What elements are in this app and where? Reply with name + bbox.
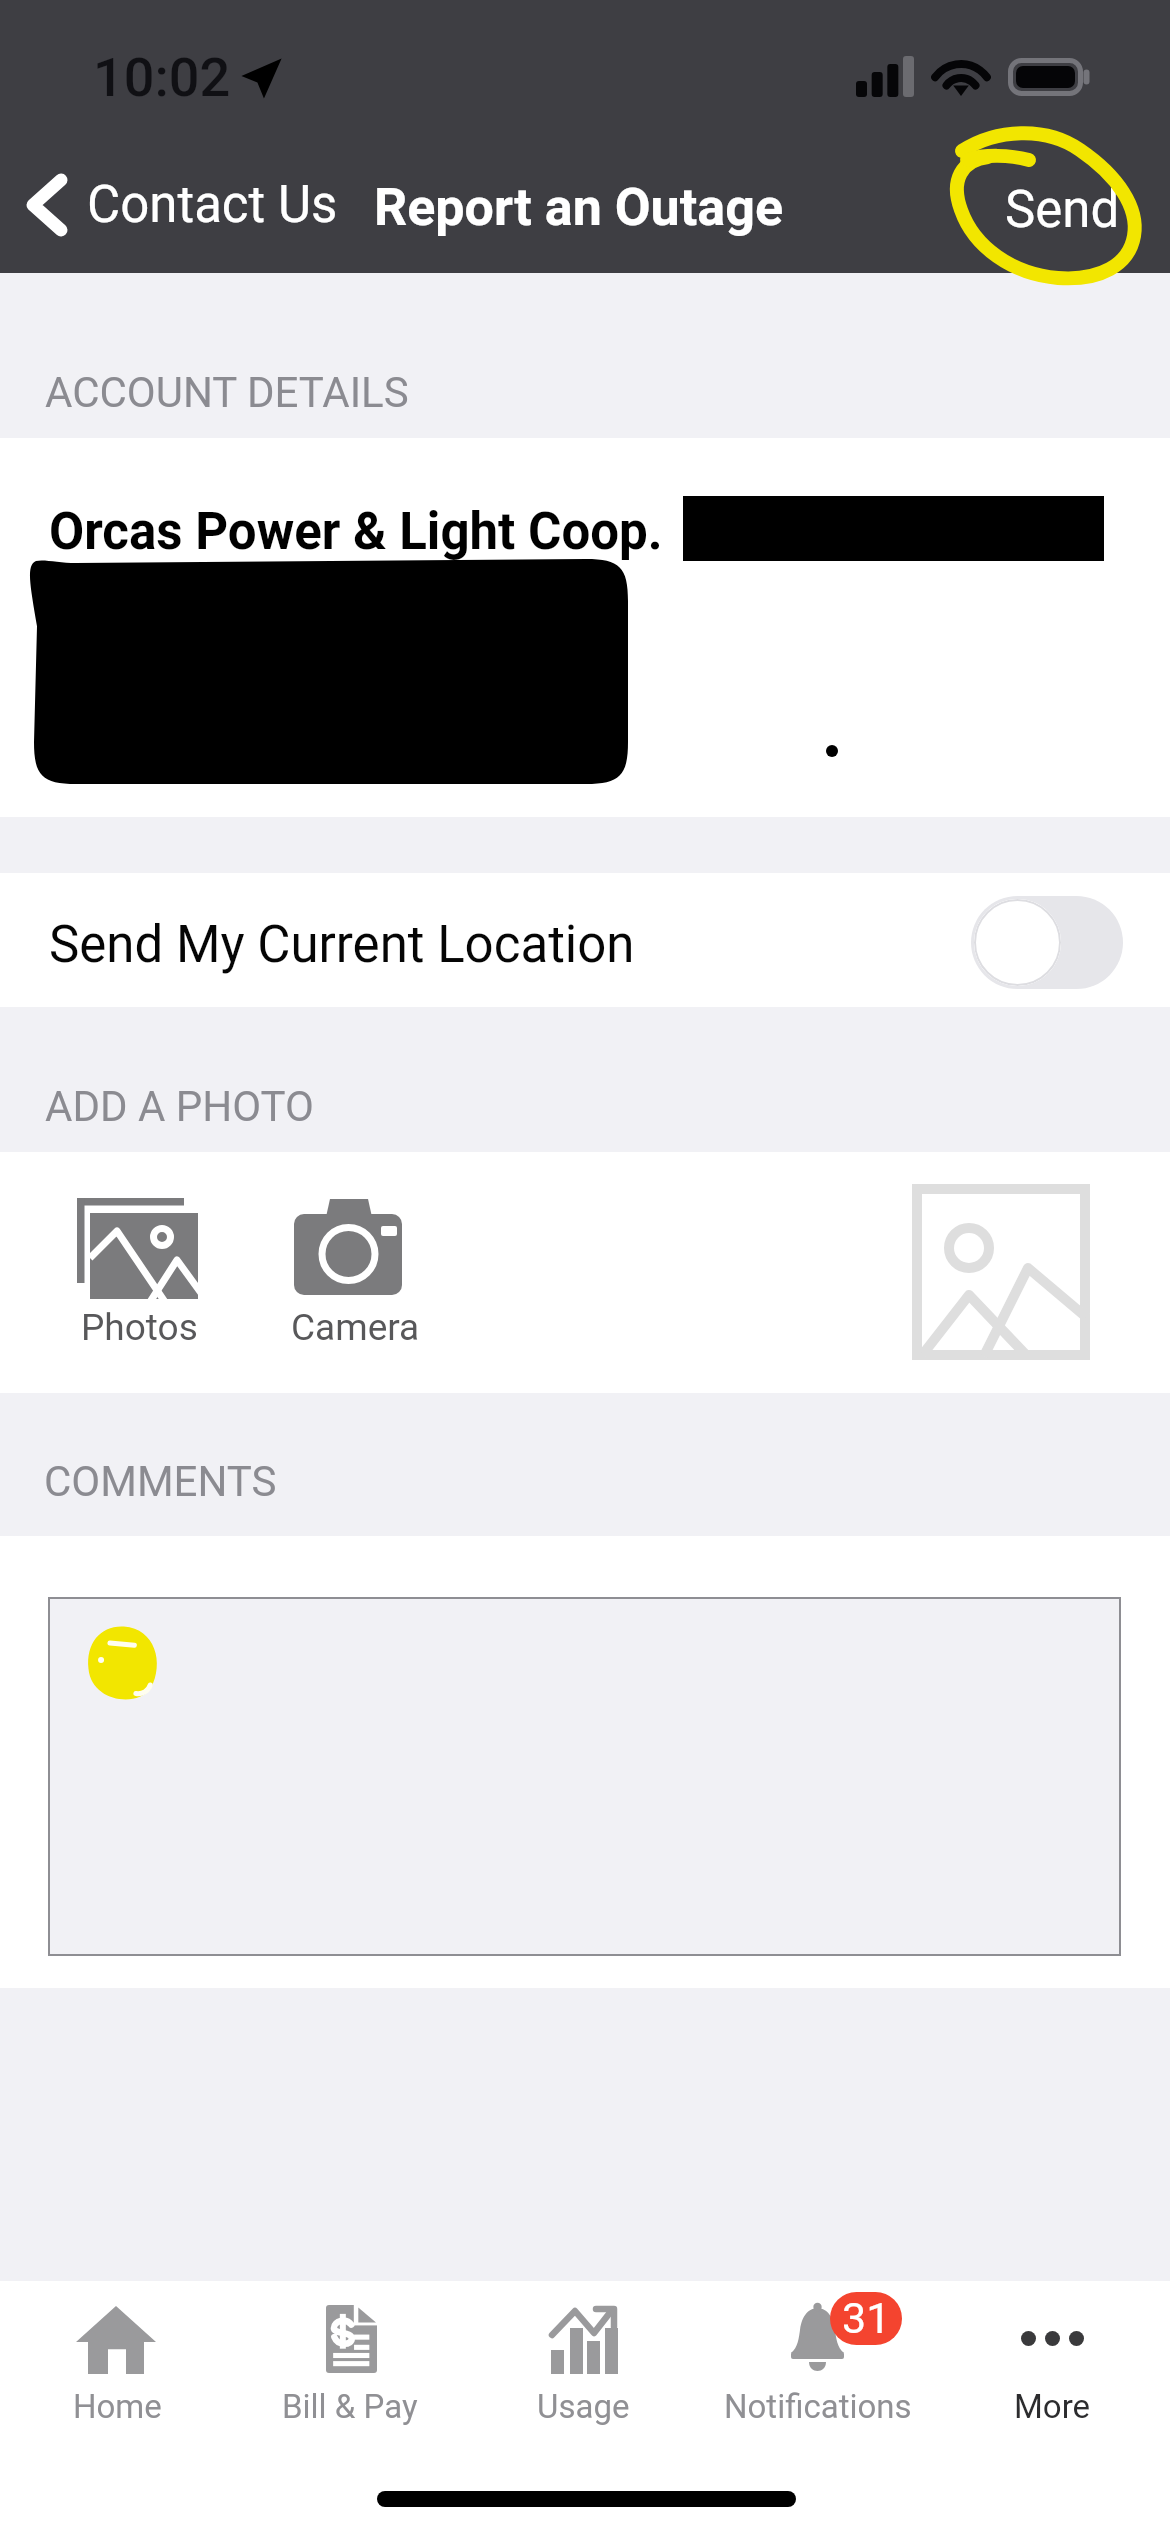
button[interactable]	[48, 1597, 1121, 1956]
button[interactable]: Contact Us	[18, 165, 346, 245]
staticText: 10:02	[93, 46, 231, 109]
button[interactable]	[702, 2281, 936, 2459]
staticText: Home	[73, 2387, 162, 2426]
button[interactable]: Photos	[62, 1186, 212, 1361]
button[interactable]	[234, 2281, 468, 2459]
staticText: Orcas Power & Light Coop.	[49, 502, 663, 562]
button[interactable]	[936, 2281, 1170, 2459]
staticText: Send My Current Location	[49, 915, 635, 975]
staticText: More	[1014, 2387, 1091, 2426]
staticText: Photos	[81, 1306, 198, 1349]
staticText: Camera	[291, 1306, 420, 1349]
button[interactable]: Camera	[282, 1186, 422, 1361]
staticText: COMMENTS	[44, 1457, 277, 1506]
button[interactable]: Send My Current Location	[0, 873, 1170, 1007]
button[interactable]	[468, 2281, 702, 2459]
staticText: ADD A PHOTO	[45, 1082, 314, 1131]
staticText: Send	[1005, 180, 1120, 240]
staticText: Contact Us	[87, 175, 338, 235]
staticText: ACCOUNT DETAILS	[45, 368, 409, 417]
button[interactable]: Send	[987, 170, 1138, 250]
staticText: Usage	[537, 2387, 630, 2426]
staticText: Bill & Pay	[282, 2387, 418, 2426]
button[interactable]	[0, 2281, 234, 2459]
staticText: Report an Outage	[374, 177, 783, 238]
staticText: 31	[842, 2293, 891, 2343]
staticText: Notifications	[724, 2387, 912, 2426]
